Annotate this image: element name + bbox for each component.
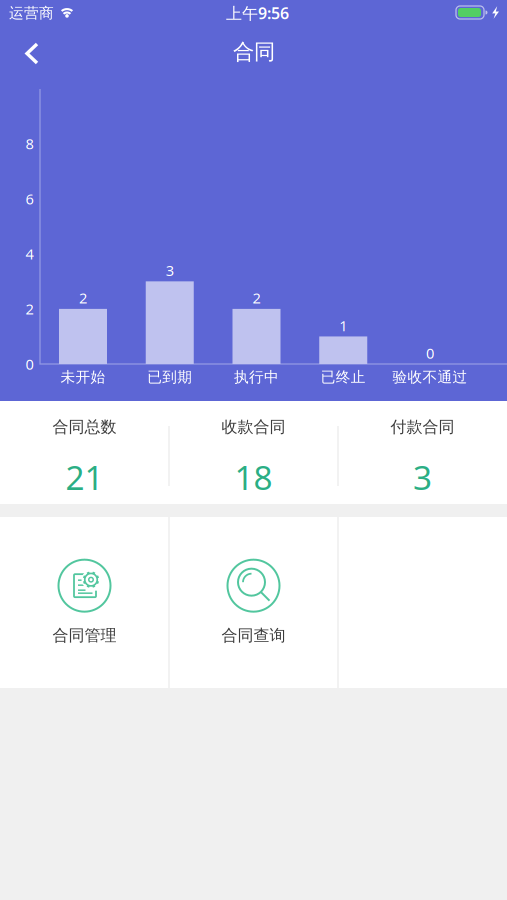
staticText: 1 [339, 316, 347, 335]
staticText: 2 [25, 299, 33, 319]
staticText: 未开始 [60, 368, 105, 386]
staticText: 4 [25, 244, 33, 264]
staticText: 3 [166, 261, 174, 280]
staticText: 已到期 [147, 368, 192, 386]
staticText: 0 [426, 343, 434, 363]
staticText: 6 [25, 189, 33, 208]
staticText: 付款合同 [390, 417, 454, 437]
staticText: 0 [25, 354, 33, 374]
staticText: 3 [413, 455, 432, 499]
staticText: 18 [234, 455, 272, 499]
staticText: 运营商 [9, 4, 54, 22]
button[interactable]: Back [10, 31, 54, 74]
staticText: 执行中 [234, 368, 279, 386]
staticText: 2 [79, 288, 87, 308]
button[interactable]: 合同查询 [169, 517, 337, 688]
staticText: 2 [252, 288, 260, 308]
staticText: 合同管理 [52, 626, 116, 645]
staticText: 8 [25, 134, 33, 153]
staticText: 合同总数 [52, 417, 116, 437]
staticText: 合同 [233, 39, 275, 65]
staticText: 上午9:56 [226, 2, 289, 24]
staticText: 合同查询 [221, 626, 285, 645]
button[interactable]: 合同管理 [0, 517, 168, 688]
staticText: 验收不通过 [392, 368, 467, 386]
staticText: 21 [65, 455, 103, 499]
staticText: 已终止 [321, 368, 366, 386]
staticText: 收款合同 [221, 417, 285, 437]
